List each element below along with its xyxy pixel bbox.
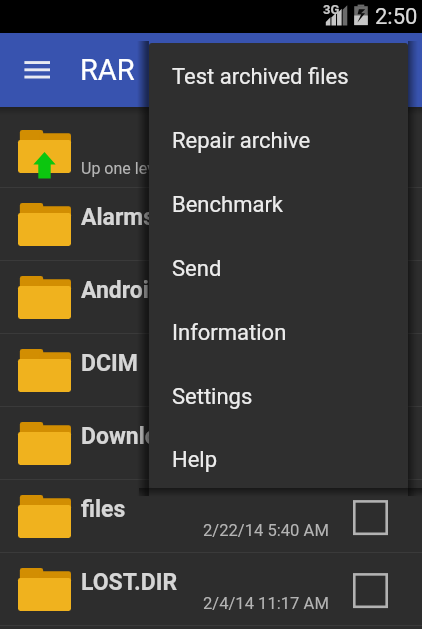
staticText: Test archived files <box>172 64 349 90</box>
button[interactable]: Test archived files <box>149 43 408 107</box>
staticText: RAR <box>80 53 135 87</box>
button[interactable]: Open navigation menu <box>12 49 62 92</box>
staticText: Settings <box>172 384 253 410</box>
button[interactable]: DCIM <box>0 334 422 407</box>
staticText: 2:50 <box>375 4 418 30</box>
staticText: Help <box>172 447 218 473</box>
button[interactable]: Send <box>149 235 408 299</box>
button[interactable]: Download <box>0 407 422 480</box>
staticText: 2/22/14 5:40 AM <box>203 521 329 540</box>
button[interactable]: Information <box>149 299 408 363</box>
button[interactable]: Up one level <box>0 115 422 188</box>
staticText: Download <box>81 423 184 450</box>
button[interactable]: LOST.DIR <box>0 553 422 626</box>
button[interactable]: Help <box>149 427 408 488</box>
button[interactable]: Repair archive <box>149 107 408 171</box>
staticText: 3G <box>323 2 340 17</box>
button[interactable]: Select LOST.DIR <box>345 565 395 615</box>
staticText: 2/4/14 11:17 AM <box>203 594 329 613</box>
button[interactable]: Settings <box>149 363 408 427</box>
staticText: Up one level <box>81 159 168 178</box>
staticText: LOST.DIR <box>81 569 178 596</box>
staticText: Benchmark <box>172 192 284 218</box>
staticText: Information <box>172 320 287 346</box>
staticText: DCIM <box>81 350 138 377</box>
button[interactable]: Select files <box>345 492 395 542</box>
button[interactable]: Benchmark <box>149 171 408 235</box>
button[interactable]: Alarms <box>0 188 422 261</box>
button[interactable]: Android <box>0 261 422 334</box>
staticText: Repair archive <box>172 128 311 154</box>
staticText: Android <box>81 277 162 304</box>
staticText: Send <box>172 256 222 282</box>
button[interactable]: files <box>0 480 422 553</box>
staticText: files <box>81 496 126 523</box>
staticText: Alarms <box>81 204 156 231</box>
